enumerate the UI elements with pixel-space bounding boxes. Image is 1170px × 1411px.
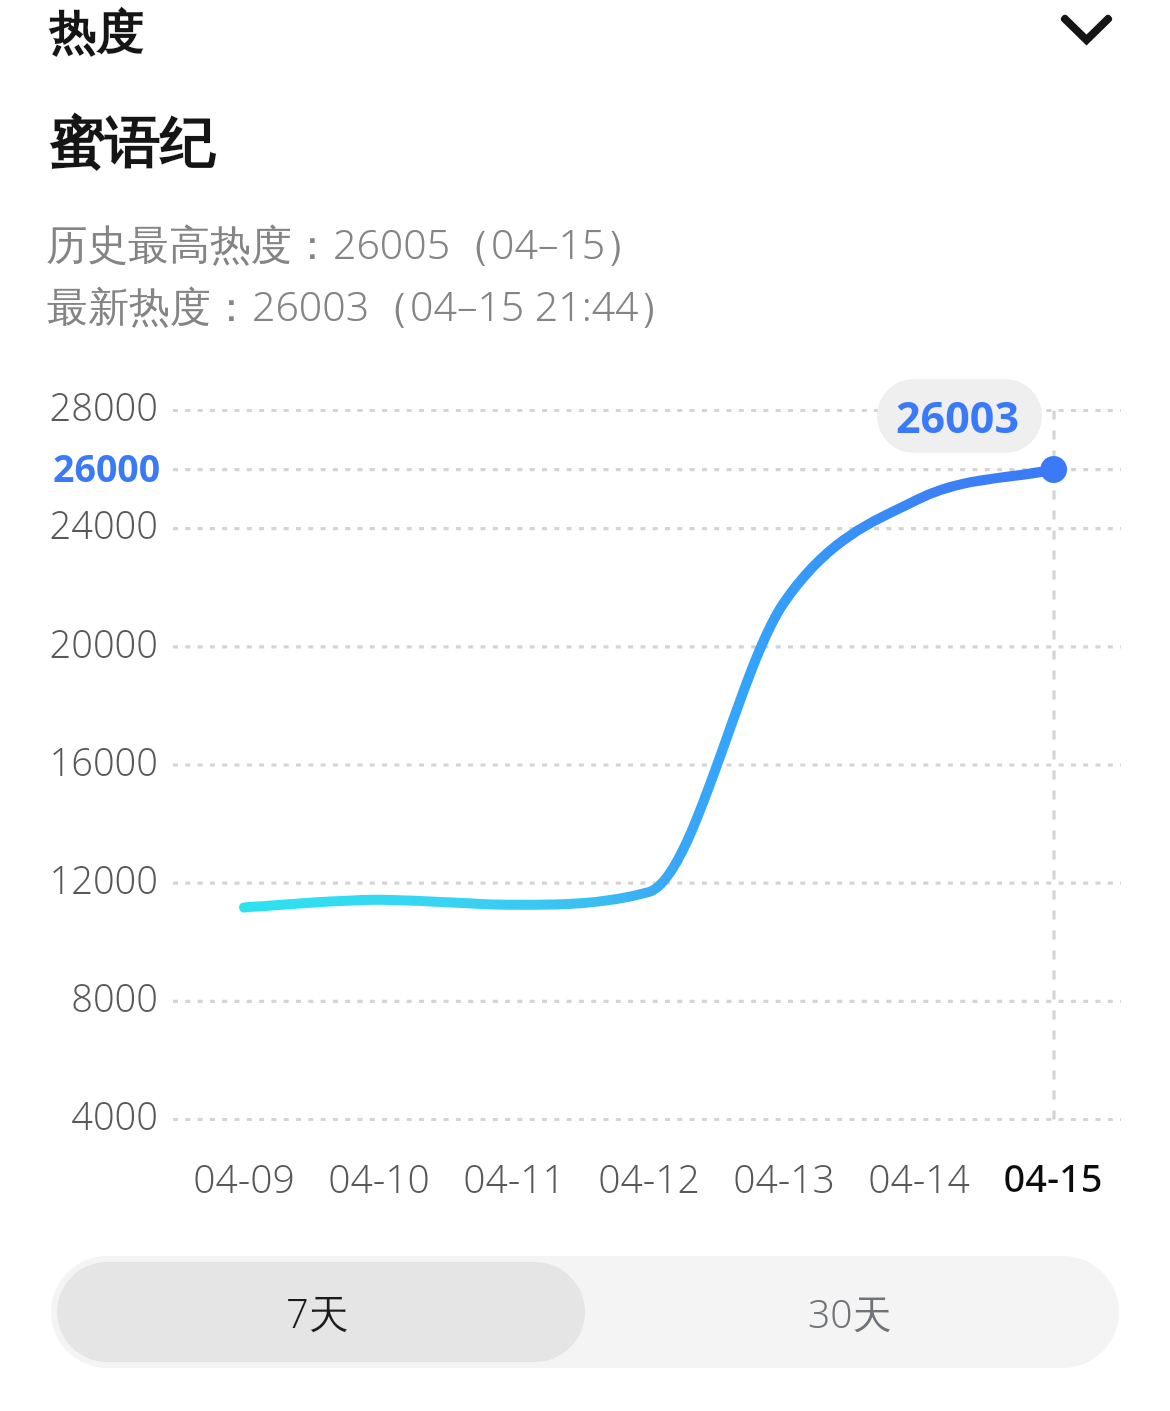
staticText: 04-12 <box>539 1151 759 1204</box>
button[interactable]: 7天 <box>57 1262 585 1362</box>
staticText: 28000 <box>0 380 158 432</box>
staticText: 04-10 <box>269 1151 489 1204</box>
staticText: 30天 <box>808 1286 892 1339</box>
staticText: 4000 <box>0 1089 158 1141</box>
staticText: 04-11 <box>404 1151 624 1204</box>
staticText: 16000 <box>0 735 158 787</box>
staticText: 04-13 <box>674 1151 894 1204</box>
staticText: 热度 <box>49 4 143 63</box>
staticText: 20000 <box>0 617 158 669</box>
button[interactable]: Collapse section <box>1043 0 1129 72</box>
staticText: 04-09 <box>134 1151 354 1204</box>
staticText: 8000 <box>0 971 158 1023</box>
staticText: 蜜语纪 <box>49 109 214 178</box>
button[interactable]: 30天 <box>585 1262 1113 1362</box>
staticText: 26003 <box>896 387 1019 446</box>
staticText: 04-14 <box>809 1151 1029 1204</box>
staticText: 历史最高热度：26005（04–15） <box>46 215 647 271</box>
staticText: 12000 <box>0 853 158 905</box>
staticText: 04-15 <box>943 1151 1163 1203</box>
staticText: 26000 <box>53 442 161 493</box>
staticText: 7天 <box>286 1285 349 1340</box>
staticText: 24000 <box>0 498 158 550</box>
staticText: 最新热度：26003（04–15 21:44） <box>47 277 680 333</box>
